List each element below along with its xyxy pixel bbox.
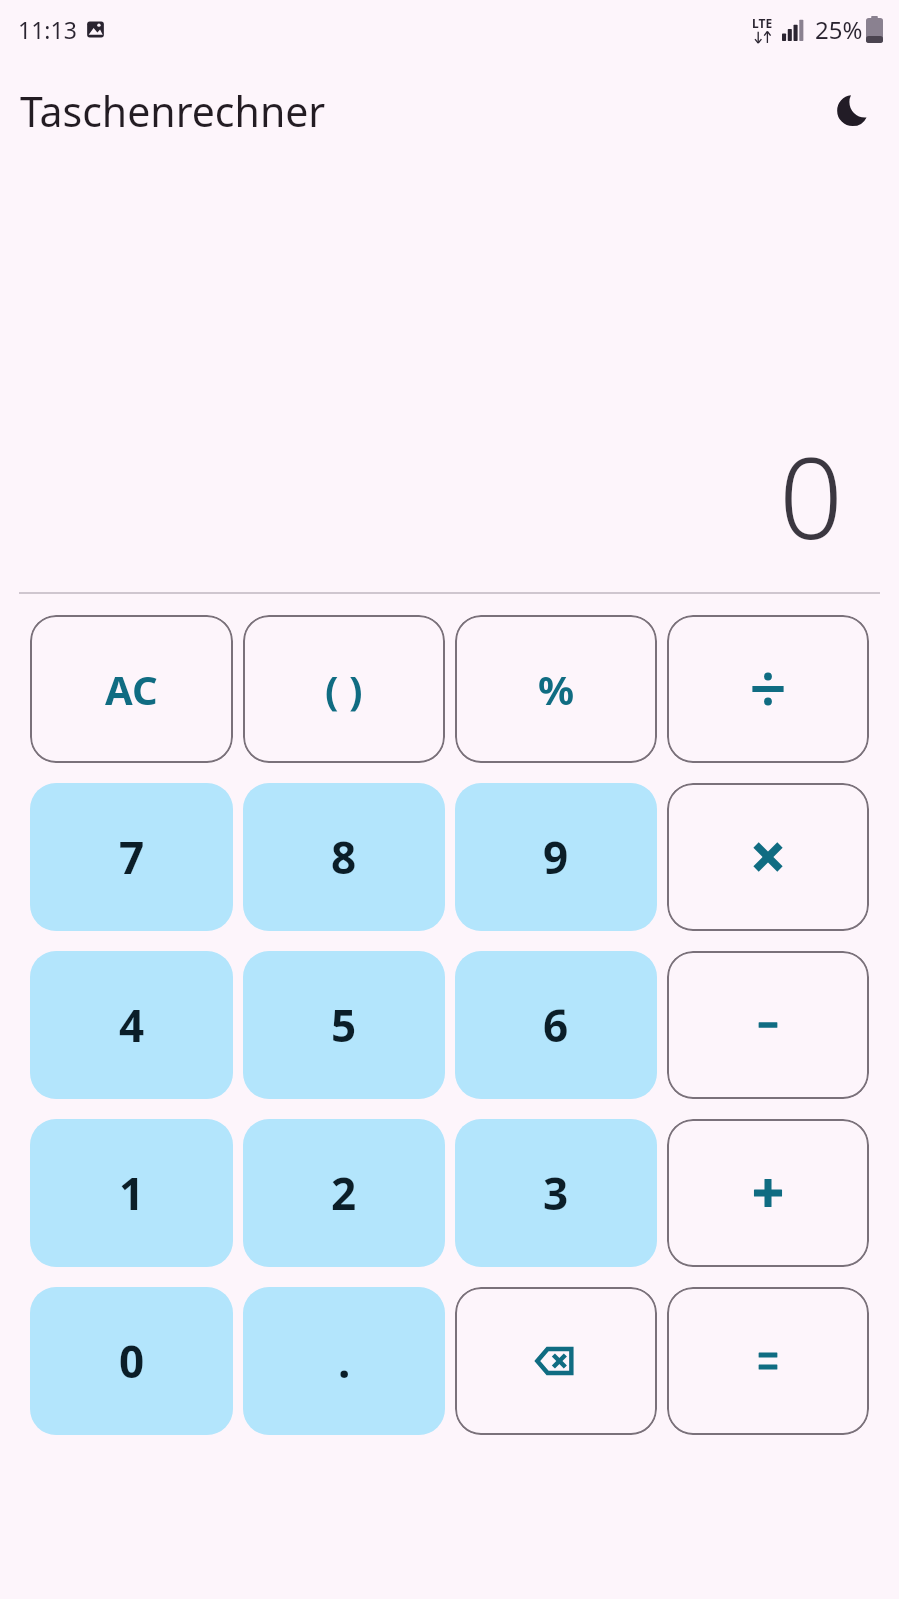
button[interactable]: Dark mode (825, 83, 881, 139)
button[interactable]: 0 (30, 1287, 233, 1435)
staticText: . (338, 1331, 351, 1391)
staticText: % (538, 662, 575, 716)
button[interactable]: Equals (667, 1287, 869, 1435)
staticText: 5 (331, 995, 357, 1055)
button[interactable]: 3 (455, 1119, 657, 1267)
staticText: 8 (331, 827, 357, 887)
button[interactable]: 5 (243, 951, 445, 1099)
button[interactable]: 4 (30, 951, 233, 1099)
button[interactable]: . (243, 1287, 445, 1435)
button[interactable]: Multiply (667, 783, 869, 931)
staticText: 0 (119, 1331, 145, 1391)
button[interactable]: AC (30, 615, 233, 763)
button[interactable]: ( ) (243, 615, 445, 763)
staticText: ( ) (325, 662, 363, 716)
button[interactable]: Backspace (455, 1287, 657, 1435)
staticText: 11:13 (18, 14, 77, 45)
button[interactable]: Divide (667, 615, 869, 763)
button[interactable]: 6 (455, 951, 657, 1099)
staticText: 4 (119, 995, 145, 1055)
staticText: 0 (779, 419, 843, 572)
staticText: AC (105, 662, 158, 716)
button[interactable]: 9 (455, 783, 657, 931)
staticText: 3 (543, 1163, 569, 1223)
staticText: 6 (543, 995, 569, 1055)
staticText: 2 (331, 1163, 357, 1223)
button[interactable]: 7 (30, 783, 233, 931)
button[interactable]: 2 (243, 1119, 445, 1267)
staticText: 1 (119, 1163, 145, 1223)
staticText: 7 (119, 827, 145, 887)
staticText: 25% (815, 13, 863, 46)
button[interactable]: 1 (30, 1119, 233, 1267)
button[interactable]: Plus (667, 1119, 869, 1267)
staticText: Taschenrechner (20, 83, 326, 139)
staticText: LTE (752, 15, 773, 31)
button[interactable]: Minus (667, 951, 869, 1099)
button[interactable]: 8 (243, 783, 445, 931)
staticText: 9 (543, 827, 569, 887)
button[interactable]: % (455, 615, 657, 763)
